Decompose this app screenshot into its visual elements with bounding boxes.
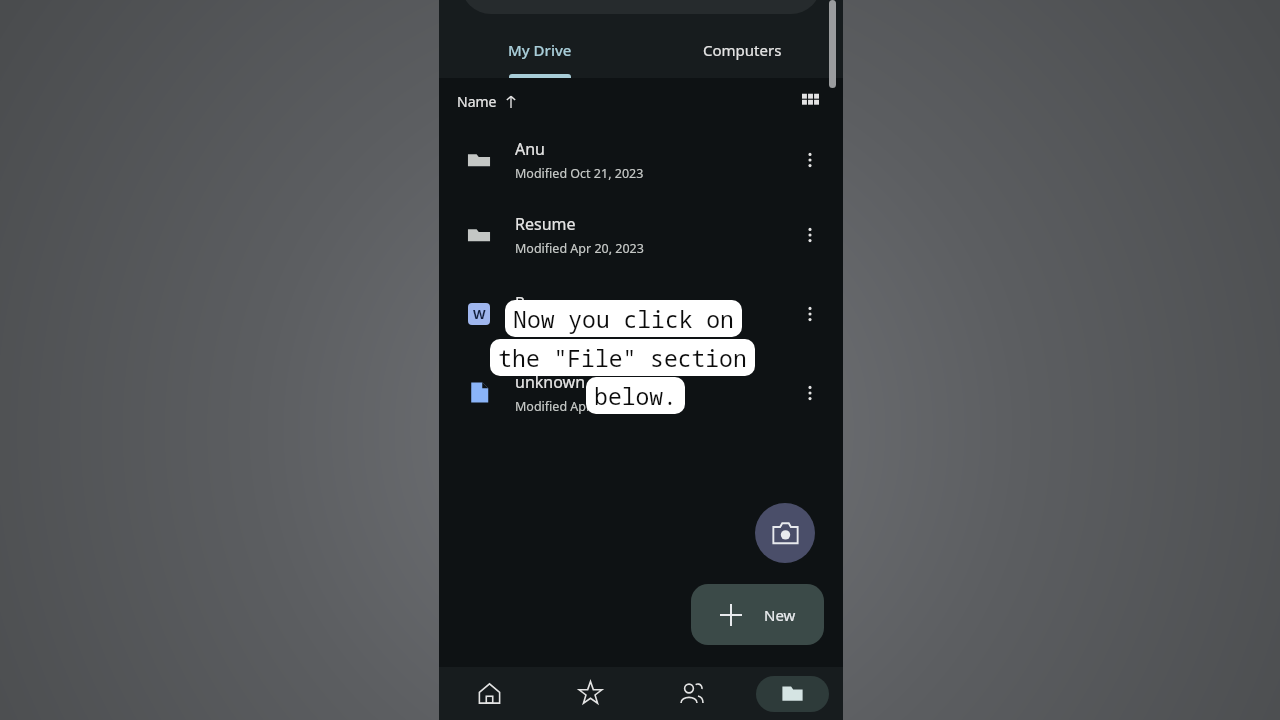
staticText: Anu <box>515 138 546 160</box>
button[interactable]: Scan with camera <box>755 503 815 563</box>
staticText: the "File" section <box>498 342 747 373</box>
button[interactable]: Resume <box>439 195 843 274</box>
button[interactable]: New <box>691 584 824 645</box>
button[interactable]: unknown <box>439 353 843 432</box>
button[interactable]: More options <box>793 297 827 331</box>
button[interactable]: Account <box>461 0 821 14</box>
button[interactable]: Starred <box>540 667 641 720</box>
button[interactable]: More options <box>793 143 827 177</box>
staticText: Resume <box>515 213 576 235</box>
button[interactable]: Grid view <box>793 84 827 118</box>
button[interactable]: Shared <box>641 667 742 720</box>
staticText: Modified Apr 20, 2023 <box>515 240 644 257</box>
staticText: Modified Apr 12, 2018 <box>515 398 644 415</box>
button[interactable]: More options <box>793 376 827 410</box>
button[interactable]: Computers <box>641 22 843 78</box>
staticText: Now you click on <box>513 303 734 334</box>
button[interactable]: More options <box>793 218 827 252</box>
staticText: Modified Oct 21, 2023 <box>515 165 644 182</box>
staticText: Computers <box>703 40 782 60</box>
staticText: Modified Mar 12, 2021 <box>515 319 647 336</box>
button[interactable]: W <box>439 274 843 353</box>
staticText: below. <box>594 380 677 411</box>
button[interactable]: My Drive <box>439 22 641 78</box>
button[interactable]: Files <box>742 667 843 720</box>
button[interactable]: Name <box>455 88 520 115</box>
button[interactable]: Anu <box>439 124 843 195</box>
staticText: New <box>764 605 796 625</box>
staticText: Name <box>457 92 497 111</box>
button[interactable]: Home <box>439 667 540 720</box>
staticText: My Drive <box>508 40 572 60</box>
staticText: unknown <box>515 371 586 393</box>
staticText: W <box>473 305 486 323</box>
staticText: Resume <box>515 292 576 314</box>
